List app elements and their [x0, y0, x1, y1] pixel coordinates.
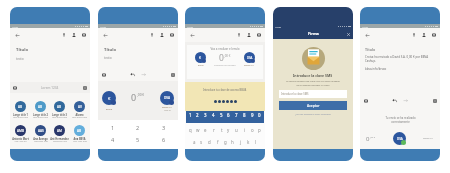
button[interactable]: Menu — [169, 71, 176, 78]
button[interactable]: Forward — [402, 97, 409, 104]
button[interactable]: d — [206, 138, 213, 145]
button[interactable]: More options — [167, 30, 177, 40]
button[interactable]: Attach — [147, 30, 157, 40]
button[interactable]: 2 — [194, 111, 201, 118]
button[interactable]: 5 — [218, 111, 225, 118]
button[interactable]: Forward — [140, 71, 147, 78]
button[interactable]: Back — [188, 31, 196, 39]
button[interactable]: 4 — [102, 136, 124, 142]
button[interactable]: p — [256, 126, 263, 133]
staticText: 0 — [131, 91, 137, 103]
button[interactable]: Reply — [391, 97, 398, 104]
button[interactable]: a — [191, 138, 198, 145]
button[interactable]: l — [252, 138, 259, 145]
staticText: g — [224, 139, 227, 145]
button[interactable]: r — [210, 126, 217, 133]
button[interactable]: Close — [345, 31, 351, 37]
button[interactable]: e — [202, 126, 209, 133]
button[interactable]: More options — [429, 30, 439, 40]
button[interactable]: 4 — [210, 111, 217, 118]
button[interactable]: AB — [70, 125, 89, 143]
button[interactable]: Back — [363, 31, 371, 39]
button[interactable]: AV — [70, 101, 89, 119]
button[interactable]: 3 — [202, 111, 209, 118]
button[interactable]: y — [225, 126, 232, 133]
button[interactable]: Attach — [59, 30, 69, 40]
button[interactable]: 1 — [187, 111, 194, 118]
staticText: r — [213, 127, 215, 133]
button[interactable]: Profile — [69, 30, 79, 40]
staticText: Título — [104, 47, 117, 53]
button[interactable]: Archive — [362, 97, 369, 104]
staticText: Large title 1 — [13, 113, 28, 116]
button[interactable]: w — [194, 126, 201, 133]
button[interactable]: Introduce la clave SMS — [279, 90, 347, 98]
staticText: AB — [38, 105, 43, 109]
button[interactable]: h — [229, 138, 236, 145]
button[interactable]: Attach — [409, 30, 419, 40]
button[interactable]: AB — [31, 101, 50, 119]
button[interactable]: Attach — [234, 30, 244, 40]
staticText: Comisión no incluida — [214, 64, 236, 67]
button[interactable]: Aceptar — [279, 101, 347, 110]
staticText: David S.A. — [423, 137, 434, 140]
button[interactable]: DSA — [160, 91, 174, 112]
staticText: texto — [16, 57, 24, 61]
staticText: 5 — [220, 112, 223, 118]
button[interactable]: AAS — [31, 125, 50, 143]
button[interactable]: 3 — [153, 124, 175, 130]
button[interactable]: Back — [13, 31, 21, 39]
staticText: l — [255, 139, 257, 145]
button[interactable]: u — [233, 126, 240, 133]
button[interactable]: t — [218, 126, 225, 133]
staticText: 5 — [136, 136, 140, 142]
staticText: 0 — [366, 135, 370, 143]
button[interactable]: f — [214, 138, 221, 145]
button[interactable]: Menu — [431, 97, 438, 104]
button[interactable]: i — [241, 126, 248, 133]
button[interactable]: 2 — [127, 124, 149, 130]
button[interactable]: Profile — [157, 30, 167, 40]
button[interactable]: 8 — [241, 111, 248, 118]
staticText: o — [251, 127, 254, 133]
button[interactable]: More options — [79, 30, 89, 40]
button[interactable]: 1 — [102, 124, 124, 130]
staticText: 9 — [251, 112, 254, 118]
staticText: h — [231, 139, 234, 145]
button[interactable]: AM — [50, 125, 69, 143]
button[interactable]: AB — [50, 101, 69, 119]
button[interactable]: 9 — [249, 111, 256, 118]
button[interactable]: More options — [254, 30, 264, 40]
button[interactable]: Profile — [244, 30, 254, 40]
button[interactable]: g — [222, 138, 229, 145]
button[interactable]: AMB — [11, 125, 30, 143]
staticText: Text goes here — [13, 116, 28, 119]
button[interactable]: Archive — [100, 71, 107, 78]
button[interactable]: Reply — [129, 71, 136, 78]
button[interactable]: o — [249, 126, 256, 133]
button[interactable]: € — [102, 91, 116, 110]
button[interactable]: bbva.info/krsoo — [365, 67, 387, 71]
button[interactable]: 6 — [225, 111, 232, 118]
button[interactable]: s — [198, 138, 205, 145]
button[interactable]: j — [237, 138, 244, 145]
staticText: ,00 € — [370, 136, 375, 139]
button[interactable]: Profile — [419, 30, 429, 40]
button[interactable]: Back — [101, 31, 109, 39]
staticText: 2 — [136, 124, 140, 130]
button[interactable]: 5 — [127, 136, 149, 142]
button[interactable]: 7 — [233, 111, 240, 118]
button[interactable]: AB — [11, 101, 30, 119]
button[interactable]: 0 — [256, 111, 263, 118]
button[interactable]: Lorem 1234 — [10, 82, 90, 93]
button[interactable]: q — [187, 126, 194, 133]
button[interactable]: k — [245, 138, 252, 145]
button[interactable]: 6 — [153, 136, 175, 142]
button[interactable]: ¿No has recibido el SMS? Solicitarlo — [295, 113, 331, 116]
staticText: Alias sa — [164, 109, 171, 112]
staticText: 10:30 — [275, 25, 282, 28]
